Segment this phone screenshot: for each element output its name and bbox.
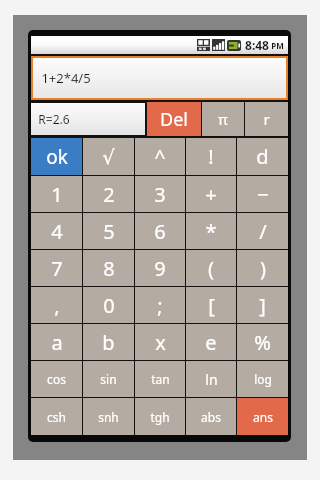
staticText: tgh bbox=[150, 409, 170, 425]
button[interactable]: Del bbox=[147, 102, 201, 136]
button[interactable]: ; bbox=[135, 287, 185, 323]
button[interactable]: 0 bbox=[83, 287, 134, 323]
staticText: 1 bbox=[51, 181, 63, 208]
button[interactable]: 7 bbox=[31, 250, 82, 286]
button[interactable]: log bbox=[237, 361, 288, 397]
button[interactable]: / bbox=[237, 213, 288, 249]
button[interactable]: R=2.6 bbox=[31, 103, 145, 135]
staticText: 8 bbox=[103, 255, 115, 282]
button[interactable]: ( bbox=[186, 250, 236, 286]
button[interactable]: 6 bbox=[135, 213, 185, 249]
button[interactable]: 4 bbox=[31, 213, 82, 249]
staticText: ; bbox=[157, 292, 163, 319]
button[interactable]: ln bbox=[186, 361, 236, 397]
staticText: 9 bbox=[154, 255, 166, 282]
button[interactable]: % bbox=[237, 324, 288, 360]
button[interactable]: e bbox=[186, 324, 236, 360]
staticText: 7 bbox=[51, 255, 63, 282]
button[interactable]: √ bbox=[83, 138, 134, 175]
button[interactable]: ) bbox=[237, 250, 288, 286]
button[interactable]: 5 bbox=[83, 213, 134, 249]
button[interactable]: − bbox=[237, 176, 288, 212]
button[interactable]: r bbox=[245, 102, 288, 136]
staticText: sin bbox=[100, 371, 117, 387]
staticText: ok bbox=[46, 144, 68, 170]
staticText: − bbox=[257, 181, 269, 208]
button[interactable]: 2 bbox=[83, 176, 134, 212]
staticText: cos bbox=[47, 371, 66, 387]
button[interactable]: tan bbox=[135, 361, 185, 397]
button[interactable]: tgh bbox=[135, 398, 185, 435]
staticText: 3 bbox=[154, 181, 166, 208]
button[interactable]: ok bbox=[31, 138, 82, 175]
button[interactable]: , bbox=[31, 287, 82, 323]
staticText: [ bbox=[208, 292, 215, 319]
button[interactable]: x bbox=[135, 324, 185, 360]
button[interactable]: 8 bbox=[83, 250, 134, 286]
staticText: 5 bbox=[103, 218, 115, 245]
button[interactable]: cos bbox=[31, 361, 82, 397]
button[interactable]: [ bbox=[186, 287, 236, 323]
staticText: ) bbox=[260, 255, 266, 282]
staticText: PM bbox=[271, 40, 284, 51]
button[interactable]: a bbox=[31, 324, 82, 360]
button[interactable]: ^ bbox=[135, 138, 185, 175]
staticText: , bbox=[54, 292, 60, 319]
staticText: ( bbox=[208, 255, 214, 282]
staticText: csh bbox=[47, 409, 66, 425]
button[interactable]: 1+2*4/5 bbox=[33, 58, 286, 98]
button[interactable]: π bbox=[202, 102, 244, 136]
staticText: x bbox=[155, 329, 166, 356]
staticText: Del bbox=[160, 107, 188, 132]
staticText: π bbox=[218, 109, 228, 129]
staticText: ! bbox=[208, 143, 214, 170]
staticText: ans bbox=[253, 409, 273, 425]
staticText: snh bbox=[98, 409, 119, 425]
staticText: 4 bbox=[51, 218, 63, 245]
button[interactable]: + bbox=[186, 176, 236, 212]
staticText: b bbox=[102, 329, 115, 356]
button[interactable]: ] bbox=[237, 287, 288, 323]
button[interactable]: 1 bbox=[31, 176, 82, 212]
button[interactable]: d bbox=[237, 138, 288, 175]
button[interactable]: snh bbox=[83, 398, 134, 435]
staticText: 8:48 bbox=[245, 37, 269, 53]
staticText: log bbox=[254, 371, 272, 387]
staticText: 2 bbox=[103, 181, 115, 208]
staticText: R=2.6 bbox=[38, 111, 70, 127]
button[interactable]: * bbox=[186, 213, 236, 249]
button[interactable]: abs bbox=[186, 398, 236, 435]
staticText: / bbox=[259, 218, 267, 245]
staticText: ^ bbox=[154, 143, 166, 170]
staticText: a bbox=[51, 329, 63, 356]
staticText: % bbox=[254, 329, 271, 356]
button[interactable]: ! bbox=[186, 138, 236, 175]
staticText: + bbox=[205, 181, 217, 208]
staticText: 1+2*4/5 bbox=[41, 69, 91, 87]
button[interactable]: b bbox=[83, 324, 134, 360]
staticText: 0 bbox=[103, 292, 115, 319]
staticText: ] bbox=[259, 292, 266, 319]
staticText: r bbox=[263, 109, 270, 129]
button[interactable]: 9 bbox=[135, 250, 185, 286]
button[interactable]: sin bbox=[83, 361, 134, 397]
staticText: 6 bbox=[154, 218, 166, 245]
staticText: ln bbox=[205, 370, 218, 389]
staticText: d bbox=[256, 143, 269, 170]
button[interactable]: 3 bbox=[135, 176, 185, 212]
staticText: * bbox=[205, 218, 217, 245]
staticText: abs bbox=[201, 409, 221, 425]
staticText: tan bbox=[151, 371, 170, 387]
staticText: √ bbox=[102, 145, 115, 168]
button[interactable]: csh bbox=[31, 398, 82, 435]
button[interactable]: ans bbox=[237, 398, 288, 435]
staticText: e bbox=[205, 329, 217, 356]
